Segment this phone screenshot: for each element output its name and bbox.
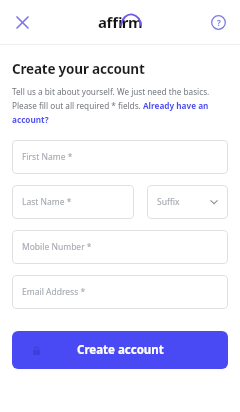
button[interactable]: First Name * (12, 140, 228, 174)
button[interactable]: Last Name * (12, 185, 134, 219)
button[interactable]: Suffix (147, 185, 228, 219)
staticText: Mobile Number * (22, 241, 92, 253)
staticText: First Name * (22, 151, 73, 163)
staticText: Suffix (157, 196, 180, 208)
staticText: Create account (77, 342, 164, 358)
staticText: Tell us a bit about yourself. We just ne… (12, 86, 228, 125)
staticText: Email Address * (22, 286, 86, 298)
button[interactable]: Help (204, 8, 232, 36)
staticText: Create your account (12, 60, 145, 78)
staticText: Last Name * (22, 196, 72, 208)
button[interactable]: Create account (12, 331, 228, 369)
button[interactable]: Mobile Number * (12, 230, 228, 264)
button[interactable]: Close (8, 8, 36, 36)
staticText: affirm (98, 12, 142, 32)
staticText: ? (217, 17, 221, 28)
button[interactable]: Email Address * (12, 275, 228, 309)
